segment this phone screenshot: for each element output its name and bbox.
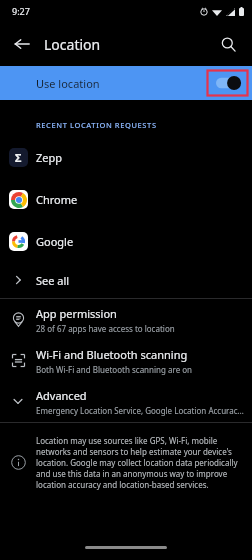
button[interactable]: Advanced <box>0 381 252 422</box>
button[interactable]: Google <box>0 220 252 262</box>
button[interactable]: See all <box>0 262 252 298</box>
button[interactable]: Back <box>6 28 38 60</box>
staticText: Advanced <box>36 388 87 403</box>
button[interactable]: Search <box>212 28 244 60</box>
button[interactable]: Σ <box>0 136 252 178</box>
staticText: 28 of 67 apps have access to location <box>36 323 175 334</box>
button[interactable]: Use location toggle <box>207 70 248 96</box>
button[interactable]: Wi-Fi and Bluetooth scanning <box>0 340 252 381</box>
staticText: See all <box>36 273 70 288</box>
button[interactable]: Chrome <box>0 178 252 220</box>
staticText: Location may use sources like GPS, Wi-Fi… <box>36 435 240 490</box>
staticText: Σ <box>15 150 22 165</box>
staticText: Emergency Location Service, Google Locat… <box>36 405 246 416</box>
button[interactable]: App permission <box>0 299 252 340</box>
staticText: 9:27 <box>12 5 30 17</box>
staticText: App permission <box>36 306 117 321</box>
staticText: Zepp <box>36 150 63 165</box>
staticText: Google <box>36 234 74 249</box>
staticText: Both Wi-Fi and Bluetooth scanning are on <box>36 364 193 375</box>
staticText: Wi-Fi and Bluetooth scanning <box>36 347 188 362</box>
staticText: Use location <box>36 76 100 91</box>
staticText: Location <box>44 35 101 54</box>
button[interactable]: Use location <box>0 66 252 100</box>
staticText: Chrome <box>36 192 78 207</box>
staticText: RECENT LOCATION REQUESTS <box>36 120 157 130</box>
